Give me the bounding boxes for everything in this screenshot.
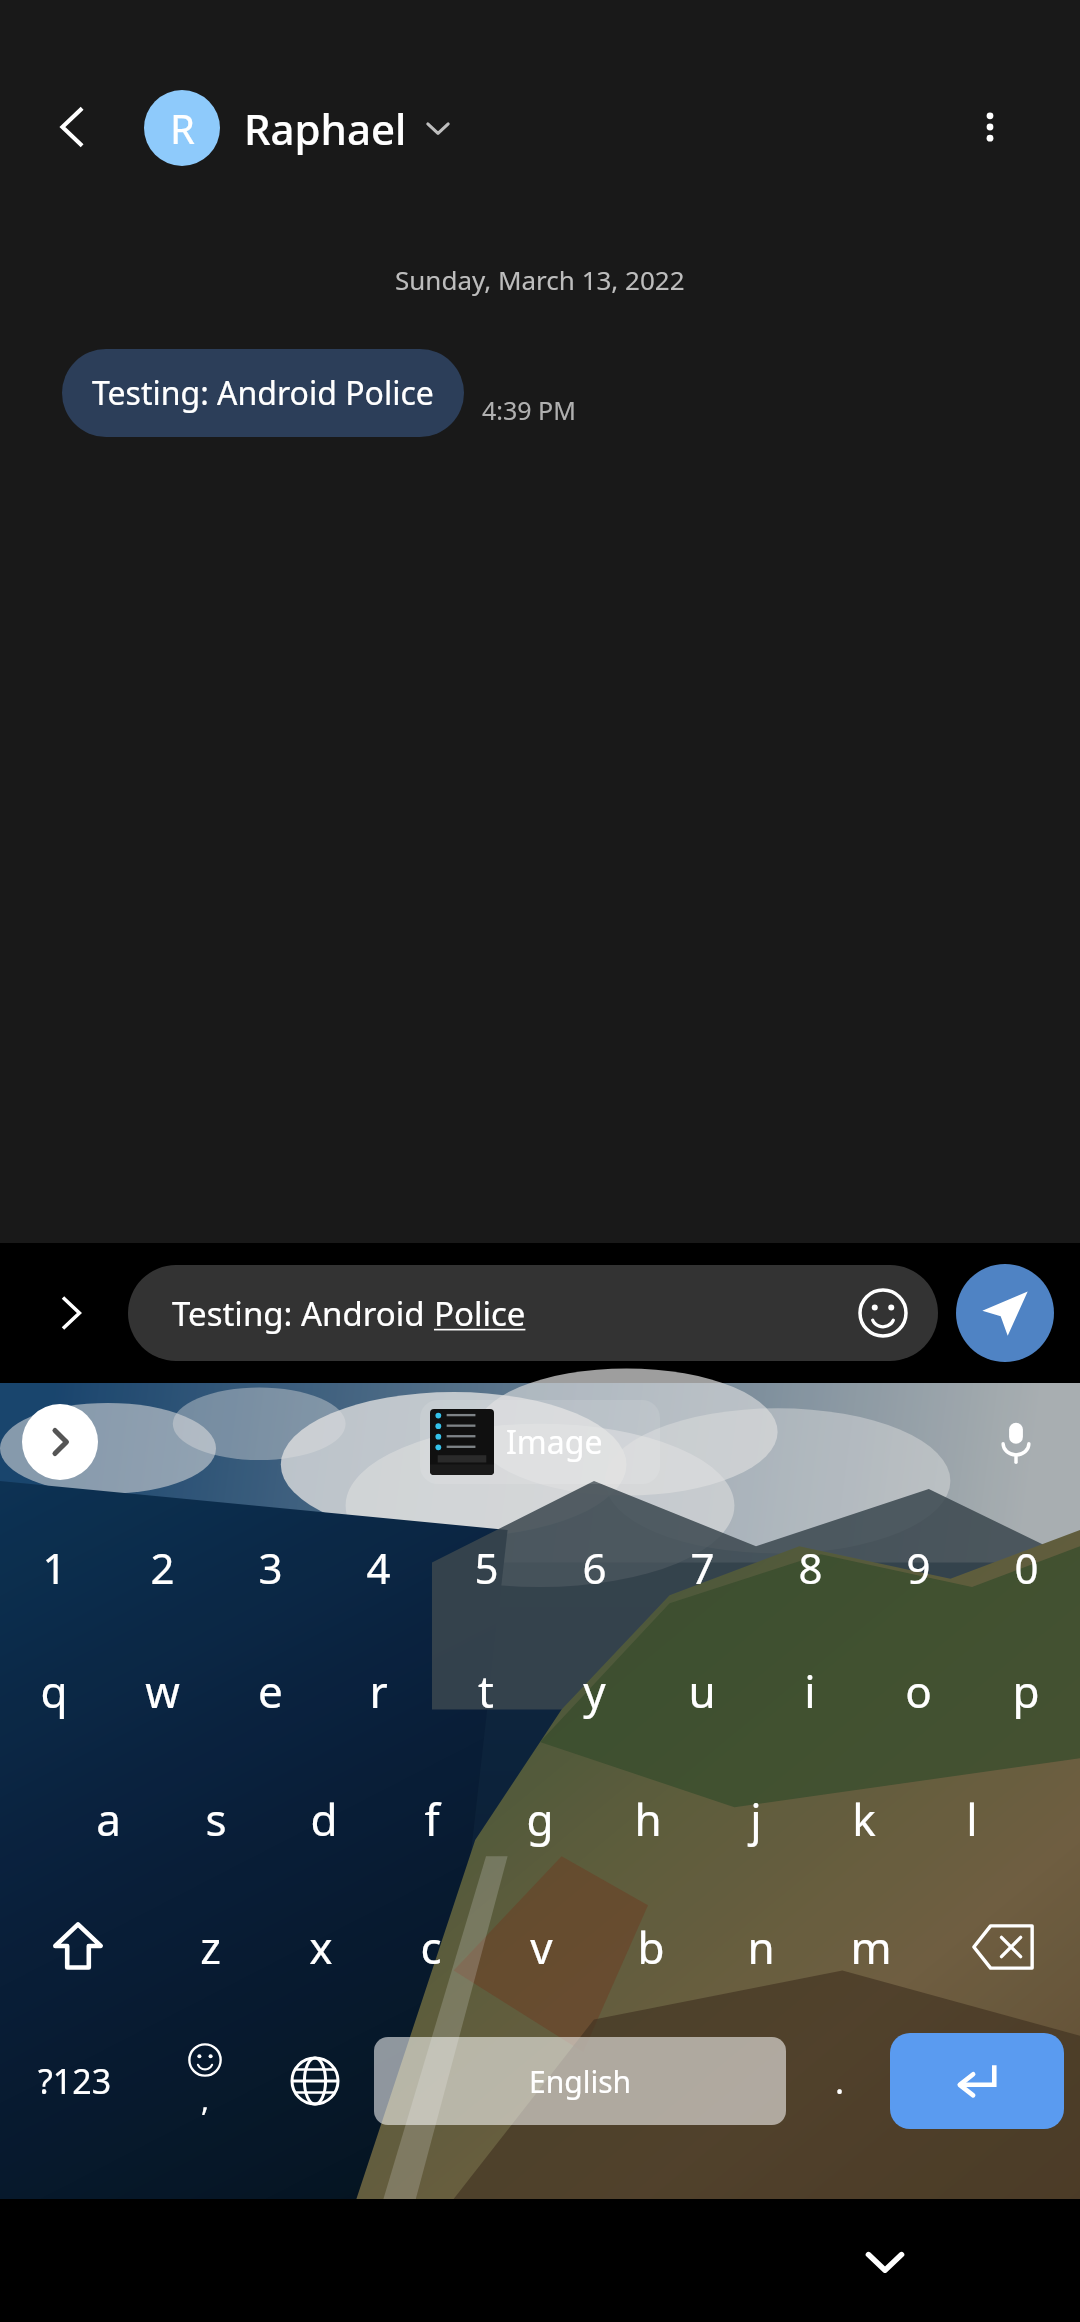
button[interactable]: w	[108, 1627, 216, 1755]
button[interactable]: d	[270, 1755, 378, 1883]
staticText: e	[258, 1661, 283, 1721]
button[interactable]: English	[374, 2037, 786, 2125]
button[interactable]: m	[816, 1883, 926, 2011]
staticText: w	[145, 1661, 180, 1721]
staticText: n	[747, 1917, 775, 1977]
staticText: h	[634, 1789, 662, 1849]
button[interactable]: 4	[324, 1507, 432, 1627]
staticText: s	[205, 1789, 227, 1849]
button[interactable]: z	[155, 1883, 266, 2011]
staticText: y	[583, 1661, 606, 1721]
button[interactable]: 3	[216, 1507, 324, 1627]
button[interactable]: 1	[0, 1507, 108, 1627]
button[interactable]: j	[702, 1755, 810, 1883]
button[interactable]: t	[432, 1627, 540, 1755]
button[interactable]: y	[540, 1627, 648, 1755]
button[interactable]: More options	[948, 85, 1032, 169]
button[interactable]: 9	[864, 1507, 972, 1627]
staticText: i	[804, 1661, 816, 1721]
button[interactable]: Insert emoji	[852, 1282, 914, 1344]
button[interactable]: 2	[108, 1507, 216, 1627]
button[interactable]: Emoji	[150, 2011, 260, 2151]
button[interactable]: n	[706, 1883, 816, 2011]
staticText: ?123	[38, 2058, 112, 2104]
button[interactable]: More suggestions	[22, 1404, 98, 1480]
staticText: c	[420, 1917, 442, 1977]
button[interactable]: Change language	[260, 2011, 370, 2151]
staticText: g	[526, 1789, 554, 1849]
button[interactable]: p	[972, 1627, 1080, 1755]
button[interactable]: Hide keyboard	[837, 2213, 933, 2309]
button[interactable]: Show attachment options	[34, 1276, 108, 1350]
button[interactable]: x	[266, 1883, 376, 2011]
staticText: 4:39 PM	[482, 393, 576, 427]
staticText: 7	[690, 1539, 715, 1596]
button[interactable]: 5	[432, 1507, 540, 1627]
staticText: k	[852, 1789, 876, 1849]
button[interactable]: o	[864, 1627, 972, 1755]
staticText: l	[966, 1789, 978, 1849]
staticText: r	[369, 1661, 388, 1721]
staticText: a	[96, 1789, 121, 1849]
staticText: .	[835, 2058, 845, 2104]
staticText: p	[1012, 1661, 1040, 1721]
button[interactable]: .	[790, 2011, 890, 2151]
button[interactable]: h	[594, 1755, 702, 1883]
button[interactable]: i	[756, 1627, 864, 1755]
staticText: 8	[798, 1539, 823, 1596]
staticText: j	[750, 1789, 762, 1849]
button[interactable]: f	[378, 1755, 486, 1883]
button[interactable]: 0	[972, 1507, 1080, 1627]
button[interactable]: g	[486, 1755, 594, 1883]
button[interactable]: 6	[540, 1507, 648, 1627]
staticText: Image	[506, 1420, 603, 1464]
button[interactable]: q	[0, 1627, 108, 1755]
staticText: x	[309, 1917, 333, 1977]
button[interactable]: 8	[756, 1507, 864, 1627]
staticText: 9	[906, 1539, 931, 1596]
button[interactable]: Image	[420, 1400, 660, 1484]
staticText: b	[637, 1917, 665, 1977]
button[interactable]: Back	[30, 85, 114, 169]
button[interactable]: R	[140, 78, 459, 178]
button[interactable]: e	[216, 1627, 324, 1755]
staticText: o	[905, 1661, 932, 1721]
staticText: t	[478, 1661, 494, 1721]
staticText: Testing: Android	[172, 1291, 434, 1336]
staticText: 4	[366, 1539, 391, 1596]
button[interactable]: Voice input	[978, 1404, 1054, 1480]
button[interactable]: v	[486, 1883, 596, 2011]
button[interactable]: r	[324, 1627, 432, 1755]
button[interactable]: k	[810, 1755, 918, 1883]
staticText: Sunday, March 13, 2022	[395, 262, 685, 297]
button[interactable]: s	[162, 1755, 270, 1883]
staticText: 1	[42, 1539, 67, 1596]
staticText: Raphael	[244, 100, 407, 157]
button[interactable]: l	[918, 1755, 1026, 1883]
staticText: 2	[150, 1539, 175, 1596]
button[interactable]: u	[648, 1627, 756, 1755]
button[interactable]: ?123	[0, 2011, 150, 2151]
button[interactable]: 7	[648, 1507, 756, 1627]
button[interactable]: a	[54, 1755, 162, 1883]
staticText: ,	[201, 2079, 210, 2120]
button[interactable]: b	[596, 1883, 706, 2011]
staticText: v	[530, 1917, 553, 1977]
button[interactable]: Testing: Android Police	[62, 349, 464, 437]
staticText: u	[688, 1661, 716, 1721]
button[interactable]: c	[376, 1883, 486, 2011]
staticText: q	[40, 1661, 68, 1721]
staticText: R	[170, 101, 195, 155]
button[interactable]: Enter	[890, 2033, 1064, 2129]
staticText: 5	[474, 1539, 499, 1596]
staticText: Testing: Android Police	[92, 371, 434, 415]
staticText: m	[850, 1917, 892, 1977]
staticText: 0	[1014, 1539, 1039, 1596]
button[interactable]: Testing: Android	[128, 1265, 938, 1361]
button[interactable]: Shift	[0, 1883, 155, 2011]
button[interactable]: Send	[956, 1264, 1054, 1362]
staticText: z	[200, 1917, 221, 1977]
staticText: f	[424, 1789, 440, 1849]
button[interactable]: Backspace	[926, 1883, 1080, 2011]
staticText: English	[529, 2061, 632, 2102]
